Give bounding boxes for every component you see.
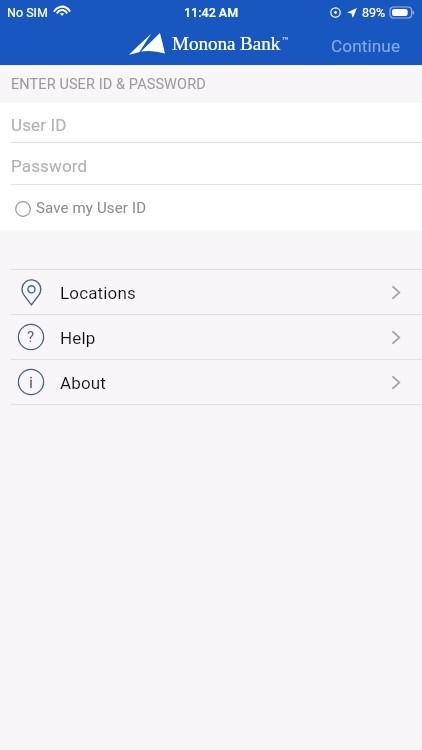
staticText: Password: [11, 156, 88, 176]
other: Locations: [18, 279, 44, 305]
staticText: Continue: [331, 36, 401, 56]
other: About: [18, 369, 44, 395]
staticText: ?: [27, 328, 35, 346]
staticText: Help: [60, 328, 96, 348]
staticText: ™: [282, 36, 288, 43]
staticText: No SIM: [7, 5, 48, 20]
staticText: ENTER USER ID & PASSWORD: [11, 76, 206, 93]
button[interactable]: Locations: [0, 270, 422, 314]
staticText: User ID: [11, 115, 67, 135]
button[interactable]: User ID: [0, 103, 422, 142]
staticText: Monona Bank: [172, 33, 281, 54]
staticText: 89%: [362, 5, 386, 20]
button[interactable]: About: [0, 360, 422, 404]
staticText: Save my User ID: [36, 199, 147, 217]
staticText: 11:42 AM: [184, 5, 239, 20]
other: Help: [18, 324, 44, 350]
button[interactable]: Continue: [318, 24, 422, 65]
staticText: Locations: [60, 283, 136, 303]
button[interactable]: Help: [0, 315, 422, 359]
button[interactable]: Save my User ID: [0, 185, 422, 230]
button[interactable]: Password: [0, 143, 422, 184]
staticText: About: [60, 373, 107, 393]
